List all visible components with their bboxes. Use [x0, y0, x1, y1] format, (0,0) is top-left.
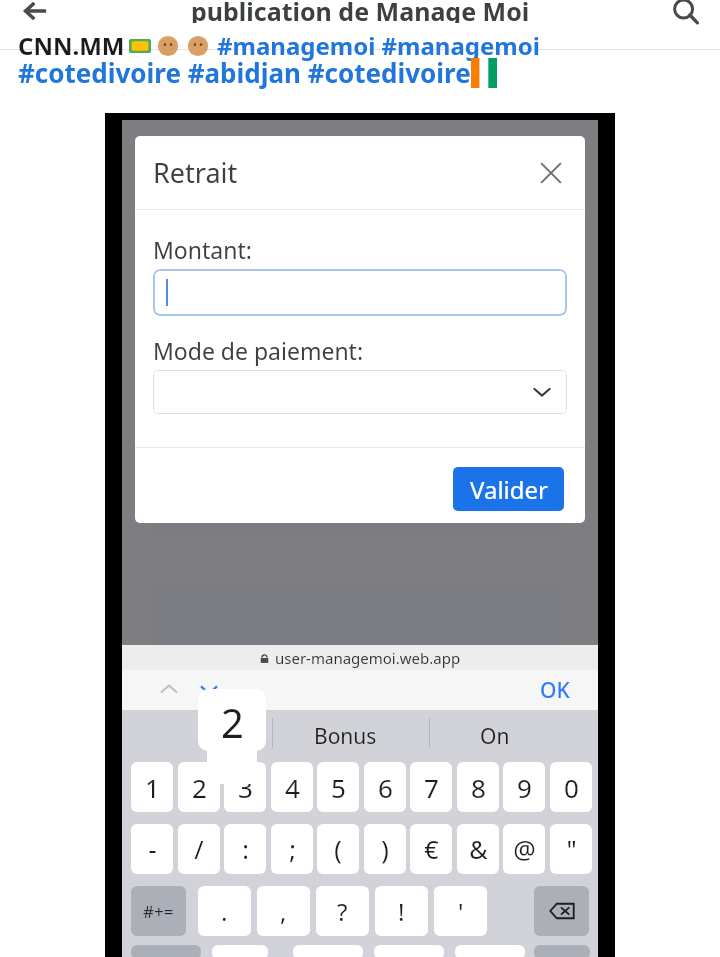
staticText: ;	[289, 832, 296, 866]
staticText: :	[242, 832, 249, 866]
staticText: Montant:	[153, 234, 252, 265]
button[interactable]: ?	[316, 886, 369, 936]
button[interactable]: 9	[503, 762, 545, 812]
staticText: 8	[471, 770, 486, 805]
button[interactable]: 3	[224, 762, 266, 812]
button[interactable]: 4	[271, 762, 313, 812]
button[interactable]: /	[178, 824, 220, 874]
button[interactable]: #cotedivoire #abidjan #cotedivoire	[18, 55, 471, 90]
staticText: -	[148, 832, 157, 866]
button[interactable]: &	[457, 824, 499, 874]
button[interactable]: (	[317, 824, 359, 874]
staticText: #+=	[143, 900, 174, 923]
button[interactable]: .	[198, 886, 251, 936]
staticText: 9	[517, 770, 532, 805]
staticText: 1	[145, 770, 160, 805]
staticText: !	[398, 895, 405, 928]
staticText: #managemoi #managemoi	[217, 29, 540, 62]
button[interactable]: ;	[271, 824, 313, 874]
button[interactable]: @	[503, 824, 545, 874]
button[interactable]: 1	[131, 762, 173, 812]
button[interactable]: Previous field	[152, 673, 186, 707]
staticText: 2	[221, 695, 244, 749]
staticText: publication de Manage Moi	[191, 0, 530, 23]
button[interactable]: -	[131, 824, 173, 874]
button[interactable]: 8	[457, 762, 499, 812]
staticText: "	[566, 832, 577, 866]
staticText: 6	[378, 770, 393, 805]
staticText: .	[221, 895, 228, 928]
button[interactable]: :	[224, 824, 266, 874]
staticText: 4	[285, 770, 300, 805]
staticText: Valider	[470, 473, 548, 506]
staticText: (	[334, 832, 342, 866]
button[interactable]: Search	[658, 0, 714, 29]
button[interactable]	[153, 269, 567, 316]
staticText: ?	[337, 895, 348, 928]
staticText: Mode de paiement:	[153, 335, 364, 366]
staticText: €	[424, 832, 439, 866]
staticText: OK	[540, 676, 570, 704]
staticText: /	[194, 832, 204, 866]
button[interactable]: Close	[527, 149, 575, 197]
staticText: 7	[424, 770, 439, 805]
staticText: CNN.MM	[18, 29, 125, 62]
button[interactable]: Bonus	[314, 722, 377, 751]
button[interactable]: 2	[178, 762, 220, 812]
button[interactable]: On	[480, 722, 510, 751]
button[interactable]: "	[550, 824, 592, 874]
staticText: ,	[280, 895, 287, 928]
button[interactable]	[153, 370, 567, 414]
button[interactable]: Backspace	[534, 886, 589, 936]
button[interactable]: Back	[8, 0, 64, 29]
staticText: 3	[238, 770, 253, 805]
button[interactable]: #+=	[131, 886, 186, 936]
staticText: )	[381, 832, 389, 866]
button[interactable]: !	[375, 886, 428, 936]
button[interactable]: Next field	[192, 673, 226, 707]
staticText: 2	[192, 770, 207, 805]
staticText: Retrait	[153, 154, 238, 191]
staticText: 5	[331, 770, 346, 805]
staticText: '	[458, 895, 464, 928]
button[interactable]: OK	[540, 676, 570, 704]
staticText: Solde	[170, 638, 233, 671]
button[interactable]: )	[364, 824, 406, 874]
button[interactable]: 7	[410, 762, 452, 812]
button[interactable]: 6	[364, 762, 406, 812]
staticText: user-managemoi.web.app	[275, 648, 461, 668]
staticText: @	[513, 832, 536, 866]
staticText: 0	[564, 770, 579, 805]
button[interactable]: ,	[257, 886, 310, 936]
button[interactable]: 0	[550, 762, 592, 812]
button[interactable]: Valider	[453, 467, 564, 511]
button[interactable]: 5	[317, 762, 359, 812]
staticText: &	[469, 832, 488, 866]
button[interactable]: €	[410, 824, 452, 874]
button[interactable]: '	[434, 886, 487, 936]
